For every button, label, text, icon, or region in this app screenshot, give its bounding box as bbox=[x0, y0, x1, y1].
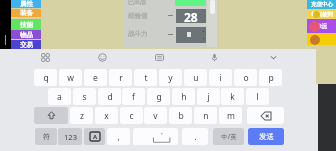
button[interactable]: a bbox=[48, 88, 71, 105]
button[interactable] bbox=[307, 33, 336, 45]
button[interactable]: 装备 bbox=[11, 9, 41, 17]
staticText: , bbox=[117, 131, 120, 142]
staticText: 发送 bbox=[259, 132, 274, 141]
staticText: 幸运 bbox=[316, 23, 327, 30]
button[interactable]: 属性 bbox=[11, 0, 41, 8]
button[interactable]: y bbox=[159, 69, 182, 86]
button[interactable]: Emoji bbox=[92, 47, 112, 67]
button[interactable]: 发送 bbox=[248, 128, 284, 145]
button[interactable]: 123 bbox=[58, 128, 82, 145]
staticText: j bbox=[207, 91, 210, 103]
button[interactable]: d bbox=[98, 88, 121, 105]
button[interactable]: c bbox=[120, 107, 143, 124]
staticText: 123 bbox=[64, 132, 77, 142]
staticText: m bbox=[227, 110, 235, 122]
staticText: u bbox=[193, 72, 199, 84]
staticText: 交易 bbox=[20, 41, 33, 49]
staticText: s bbox=[82, 91, 87, 103]
button[interactable]: , bbox=[107, 128, 130, 145]
button[interactable]: w bbox=[59, 69, 82, 86]
staticText: f bbox=[132, 91, 135, 103]
staticText: v bbox=[153, 110, 158, 122]
staticText: 属性 bbox=[20, 0, 33, 8]
button[interactable]: e bbox=[84, 69, 107, 86]
staticText: 中/英 bbox=[221, 132, 237, 141]
staticText: w bbox=[67, 72, 74, 84]
staticText: 物品 bbox=[20, 31, 33, 39]
button[interactable]: 符 bbox=[35, 128, 57, 145]
staticText: r bbox=[119, 72, 123, 84]
staticText: 经验值 bbox=[128, 12, 148, 20]
button[interactable]: 物品 bbox=[11, 30, 41, 39]
button[interactable]: u bbox=[184, 69, 207, 86]
button[interactable]: n bbox=[194, 107, 217, 124]
button[interactable]: o bbox=[234, 69, 257, 86]
button[interactable]: 幸运 bbox=[307, 19, 336, 33]
staticText: i bbox=[219, 72, 222, 84]
button[interactable]: z bbox=[70, 107, 93, 124]
button[interactable]: Apps bbox=[35, 47, 55, 67]
staticText: b bbox=[178, 110, 184, 122]
button[interactable]: x bbox=[95, 107, 118, 124]
button[interactable]: Voice input bbox=[204, 47, 224, 67]
button[interactable]: s bbox=[73, 88, 96, 105]
staticText: 每日签到 bbox=[311, 11, 333, 18]
button[interactable]: q bbox=[34, 69, 57, 86]
button[interactable]: . bbox=[182, 128, 208, 145]
button[interactable]: l bbox=[246, 88, 269, 105]
staticText: t bbox=[144, 72, 148, 84]
staticText: k bbox=[230, 91, 235, 103]
staticText: . bbox=[194, 131, 197, 142]
button[interactable]: 每日签到 bbox=[307, 10, 336, 19]
button[interactable]: v bbox=[144, 107, 167, 124]
button[interactable]: g bbox=[147, 88, 170, 105]
button[interactable]: b bbox=[169, 107, 192, 124]
button[interactable]: 充值中心 bbox=[307, 0, 336, 9]
staticText: c bbox=[129, 110, 134, 122]
staticText: a bbox=[57, 91, 62, 103]
staticText: 充值中心 bbox=[311, 1, 333, 8]
button[interactable]: Shift bbox=[34, 107, 68, 124]
button[interactable]: k bbox=[221, 88, 244, 105]
staticText: z bbox=[80, 110, 84, 122]
staticText: e bbox=[93, 72, 98, 84]
staticText: 战斗力 bbox=[128, 30, 148, 38]
button[interactable]: j bbox=[197, 88, 220, 105]
staticText: p bbox=[268, 72, 274, 84]
staticText: 28 bbox=[184, 9, 198, 23]
staticText: 已出战 bbox=[128, 0, 146, 6]
button[interactable]: f bbox=[122, 88, 145, 105]
staticText: 符 bbox=[43, 132, 50, 141]
button[interactable]: p bbox=[259, 69, 282, 86]
button[interactable]: h bbox=[172, 88, 195, 105]
button[interactable]: Stickers bbox=[149, 47, 169, 67]
button[interactable]: m bbox=[219, 107, 242, 124]
staticText: y bbox=[168, 72, 173, 84]
button[interactable]: r bbox=[109, 69, 132, 86]
staticText: h bbox=[181, 91, 187, 103]
staticText: g bbox=[156, 91, 162, 103]
button[interactable]: t bbox=[134, 69, 157, 86]
button[interactable]: Space bbox=[133, 128, 178, 145]
staticText: o bbox=[243, 72, 249, 84]
staticText: q bbox=[43, 72, 49, 84]
button[interactable]: 交易 bbox=[11, 40, 41, 49]
staticText: l bbox=[256, 91, 259, 103]
staticText: d bbox=[107, 91, 113, 103]
staticText: A bbox=[93, 133, 98, 141]
button[interactable]: i bbox=[209, 69, 232, 86]
button[interactable]: 中/英 bbox=[213, 128, 244, 145]
button[interactable]: 技能 bbox=[11, 19, 41, 30]
staticText: n bbox=[203, 110, 209, 122]
staticText: 装备 bbox=[20, 9, 33, 17]
button[interactable]: Handwriting input bbox=[84, 128, 105, 145]
button[interactable]: Backspace bbox=[247, 107, 284, 124]
staticText: 技能 bbox=[20, 21, 33, 29]
button[interactable]: Hide keyboard bbox=[263, 47, 283, 67]
staticText: x bbox=[104, 110, 109, 122]
